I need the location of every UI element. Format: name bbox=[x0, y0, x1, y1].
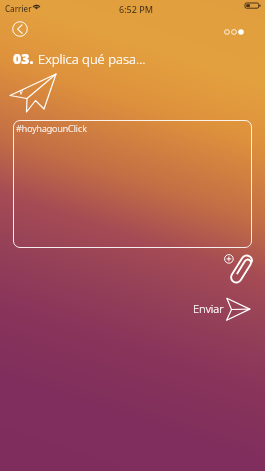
staticText: #hoyhagounClick bbox=[16, 122, 87, 134]
staticText: 6:52 PM bbox=[119, 3, 153, 15]
staticText: 03. bbox=[13, 49, 34, 68]
staticText: Enviar bbox=[193, 301, 224, 316]
button[interactable]: #hoyhagounClick bbox=[13, 120, 252, 248]
button[interactable]: Attach file bbox=[220, 250, 258, 288]
button[interactable]: Enviar bbox=[188, 296, 254, 324]
staticText: Explica qué pasa... bbox=[38, 50, 146, 68]
button[interactable]: Back bbox=[12, 21, 28, 37]
staticText: Carrier bbox=[5, 3, 32, 14]
